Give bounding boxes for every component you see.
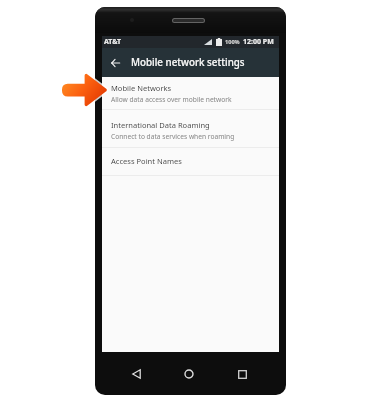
other: Pointer (62, 74, 107, 106)
staticText: AT&T (104, 37, 122, 47)
button[interactable]: Recent apps (232, 364, 252, 384)
staticText: 12:00 PM (243, 37, 274, 47)
staticText: Access Point Names (111, 156, 182, 166)
button[interactable]: Back (106, 53, 125, 72)
button[interactable]: Mobile Networks (102, 77, 279, 110)
button[interactable]: Back (126, 364, 146, 384)
button[interactable]: Home (179, 364, 199, 384)
staticText: 100% (225, 38, 240, 46)
button[interactable]: Access Point Names (102, 148, 279, 176)
staticText: Allow data access over mobile network (111, 95, 232, 104)
staticText: Mobile Networks (111, 83, 172, 93)
button[interactable]: International Data Roaming (102, 110, 279, 148)
staticText: International Data Roaming (111, 120, 210, 130)
staticText: Connect to data services when roaming (111, 132, 235, 141)
staticText: Mobile network settings (131, 56, 245, 69)
